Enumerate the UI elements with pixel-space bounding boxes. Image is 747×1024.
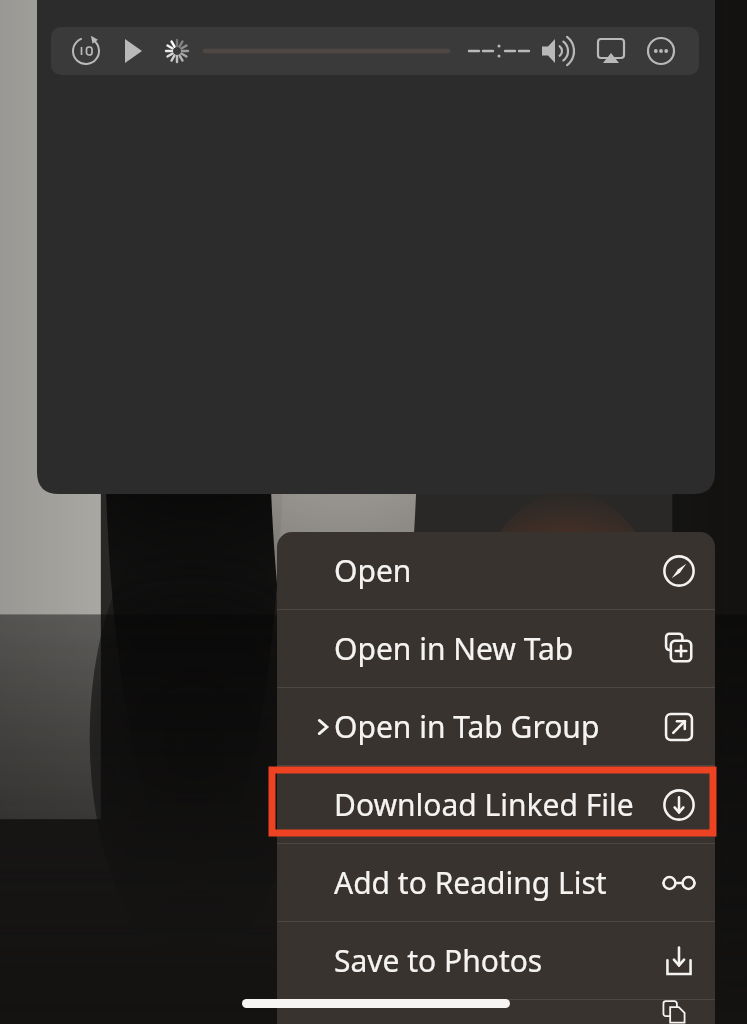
button[interactable]: Skip back 10 seconds: [64, 29, 108, 73]
button[interactable]: AirPlay: [589, 29, 633, 73]
button[interactable]: Save to Photos: [277, 922, 715, 999]
button[interactable]: Open in Tab Group: [277, 688, 715, 765]
staticText: Save to Photos: [334, 940, 543, 981]
staticText: Open in Tab Group: [334, 706, 600, 747]
button[interactable]: Loading: [155, 29, 199, 73]
staticText: Download Linked File: [334, 784, 634, 825]
button[interactable]: Download Linked File: [277, 766, 715, 843]
staticText: Open: [334, 550, 412, 591]
button[interactable]: [277, 1000, 715, 1024]
button[interactable]: Open in New Tab: [277, 610, 715, 687]
staticText: Add to Reading List: [334, 862, 607, 903]
button[interactable]: Play: [110, 29, 154, 73]
button[interactable]: Volume: [534, 29, 578, 73]
button[interactable]: Add to Reading List: [277, 844, 715, 921]
button[interactable]: More options: [639, 29, 683, 73]
button[interactable]: Open: [277, 532, 715, 609]
staticText: Open in New Tab: [334, 628, 574, 669]
button[interactable]: Scrubber: [200, 36, 450, 64]
